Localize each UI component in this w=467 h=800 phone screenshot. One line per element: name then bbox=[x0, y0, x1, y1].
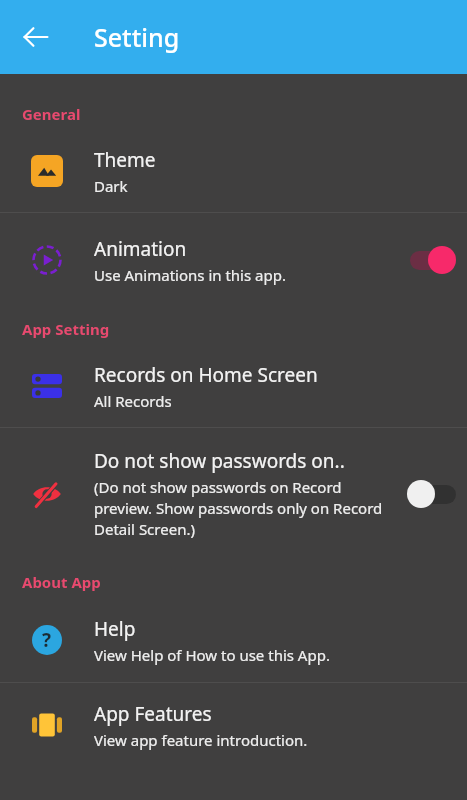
staticText: Theme bbox=[94, 147, 156, 173]
staticText: App Setting bbox=[22, 319, 110, 339]
staticText: Animation bbox=[94, 236, 187, 262]
button[interactable]: Do not show passwords toggle, off bbox=[406, 479, 458, 509]
button[interactable]: App Features bbox=[0, 683, 467, 767]
staticText: View app feature introduction. bbox=[94, 730, 308, 750]
button[interactable]: Theme bbox=[0, 130, 467, 212]
staticText: Dark bbox=[94, 176, 128, 196]
staticText: General bbox=[22, 104, 81, 124]
staticText: Setting bbox=[94, 20, 180, 54]
staticText: All Records bbox=[94, 391, 172, 411]
staticText: App Features bbox=[94, 701, 212, 727]
staticText: (Do not show passwords on Record preview… bbox=[94, 477, 389, 540]
button[interactable]: Back bbox=[10, 11, 62, 63]
button[interactable]: Records on Home Screen bbox=[0, 345, 467, 427]
staticText: Help bbox=[94, 616, 136, 642]
staticText: Use Animations in this app. bbox=[94, 265, 286, 285]
staticText: About App bbox=[22, 572, 101, 592]
staticText: Records on Home Screen bbox=[94, 362, 318, 388]
staticText: View Help of How to use this App. bbox=[94, 645, 330, 665]
staticText: ? bbox=[42, 627, 52, 653]
button[interactable]: Do not show passwords on.. bbox=[0, 428, 467, 560]
button[interactable]: Animation bbox=[0, 213, 467, 307]
staticText: Do not show passwords on.. bbox=[94, 448, 345, 474]
button[interactable]: ? bbox=[0, 598, 467, 682]
button[interactable]: Animation toggle, on bbox=[406, 245, 458, 275]
